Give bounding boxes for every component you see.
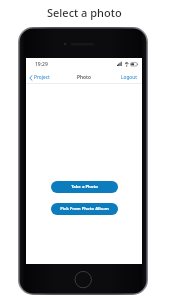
button[interactable]: Pick From Photo Album <box>51 203 118 215</box>
button[interactable]: Project <box>29 74 50 81</box>
staticText: Photo <box>77 74 91 81</box>
button[interactable]: Take a Photo <box>51 181 118 193</box>
staticText: Pick From Photo Album <box>60 206 109 212</box>
staticText: Project <box>34 74 50 81</box>
staticText: 19:29 <box>35 61 48 68</box>
staticText: Select a photo <box>47 5 122 20</box>
staticText: Logout <box>121 74 137 81</box>
staticText: Take a Photo <box>71 184 98 190</box>
button[interactable]: Logout <box>121 74 137 81</box>
